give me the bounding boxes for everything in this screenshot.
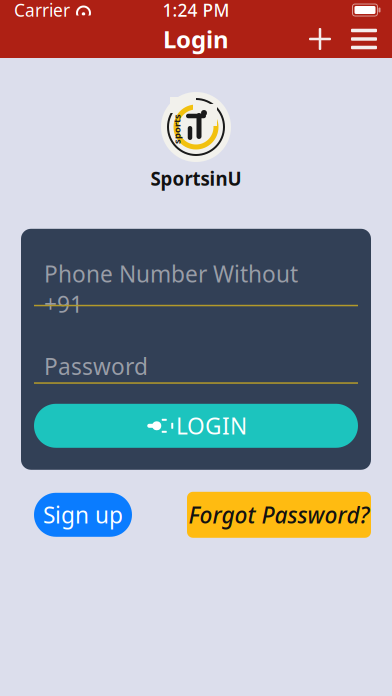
staticText: 1:24 PM [162, 0, 229, 21]
button[interactable]: LOGIN [34, 404, 358, 448]
staticText: Phone Number Without +91 [44, 259, 298, 319]
staticText: Password [44, 351, 148, 381]
staticText: SportsinU [150, 166, 241, 191]
staticText: Login [163, 23, 229, 55]
staticText: sports [162, 123, 192, 135]
button[interactable]: Menu [342, 20, 386, 58]
button[interactable]: Add [298, 20, 342, 58]
staticText: Forgot Password? [188, 500, 369, 530]
button[interactable]: Forgot Password? [187, 492, 371, 538]
staticText: Sign up [43, 500, 123, 530]
button[interactable]: Sign up [34, 493, 132, 537]
staticText: Carrier [14, 0, 70, 21]
staticText: LOGIN [176, 411, 247, 441]
